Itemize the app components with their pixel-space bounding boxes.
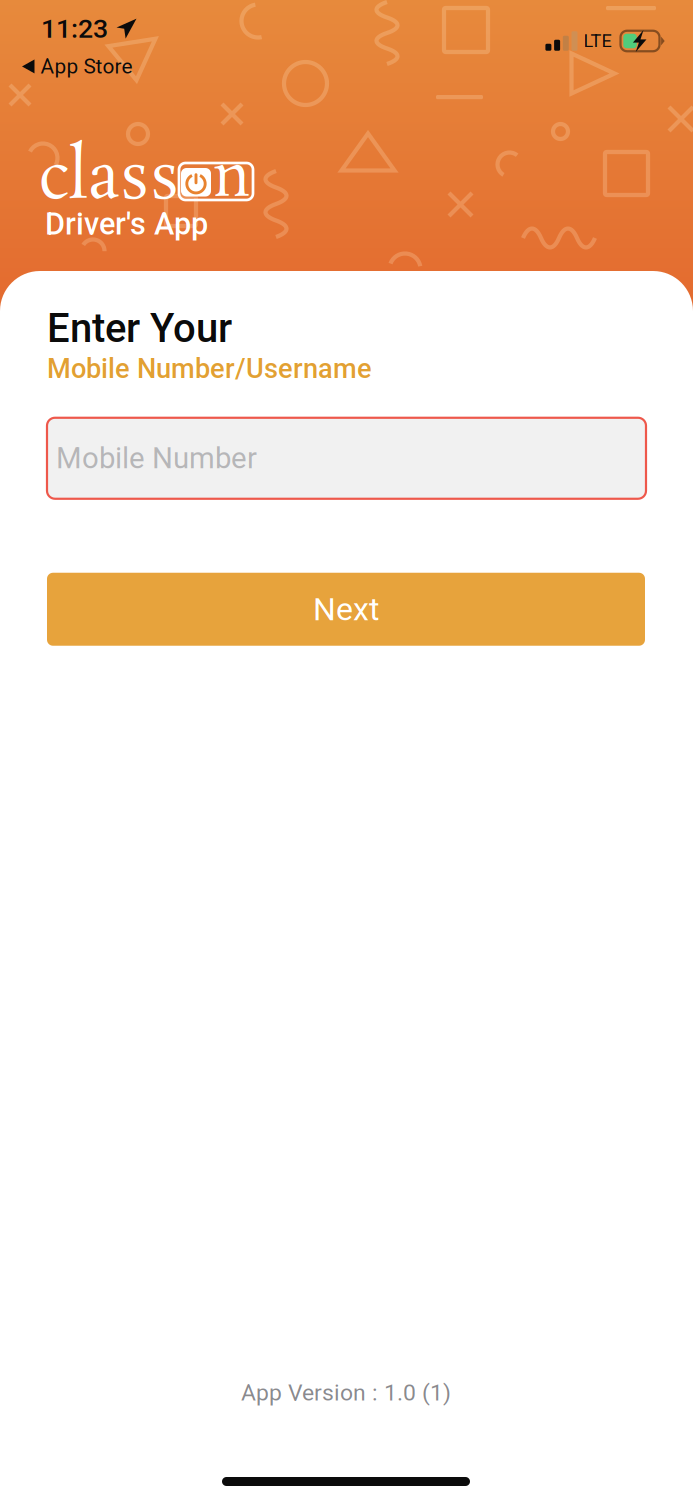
staticText: class <box>39 135 180 225</box>
staticText: Mobile Number/Username <box>47 353 372 385</box>
staticText: App Version : 1.0 (1) <box>241 1379 451 1406</box>
staticText: 11:23 <box>41 13 108 44</box>
staticText: n <box>213 137 251 221</box>
button[interactable]: Next <box>47 573 645 646</box>
staticText: Driver's App <box>45 206 208 242</box>
staticText: Mobile Number <box>56 441 257 475</box>
staticText: App Store <box>40 54 132 79</box>
button[interactable]: App Store <box>22 54 132 79</box>
staticText: LTE <box>583 30 611 52</box>
staticText: Enter Your <box>47 305 232 352</box>
staticText: Next <box>313 590 379 628</box>
